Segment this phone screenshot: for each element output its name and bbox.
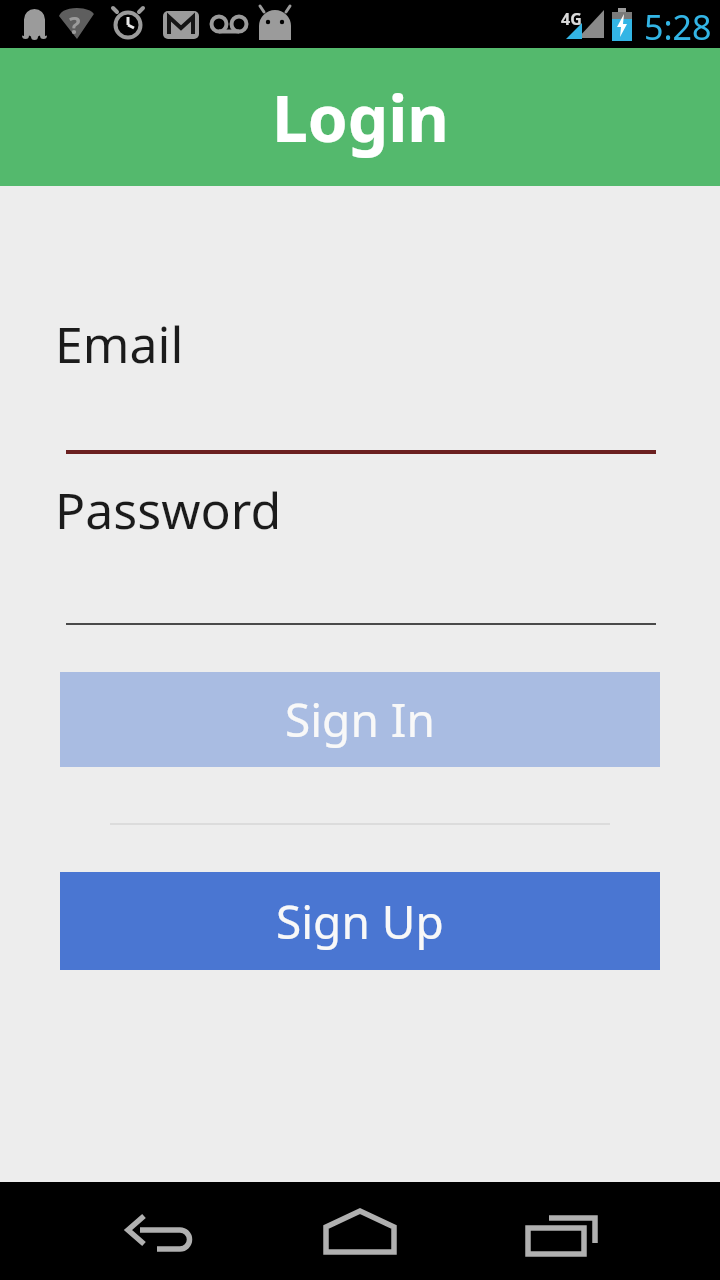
staticText: Password	[55, 476, 282, 544]
button[interactable]: Sign Up	[60, 872, 660, 970]
staticText: 4G	[561, 8, 582, 30]
staticText: Sign Up	[276, 890, 444, 953]
staticText: Email	[55, 310, 184, 378]
staticText: ?	[69, 8, 81, 41]
button[interactable]	[510, 1182, 610, 1280]
staticText: 5:28	[644, 4, 712, 50]
staticText: Sign In	[285, 688, 435, 751]
button[interactable]	[310, 1182, 410, 1280]
button[interactable]: Sign In	[60, 672, 660, 767]
button[interactable]	[110, 1182, 210, 1280]
staticText: Login	[272, 74, 449, 161]
